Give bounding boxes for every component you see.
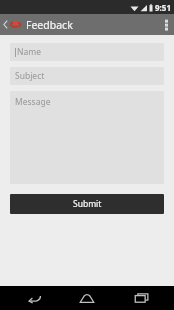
button[interactable]: Submit — [10, 194, 164, 214]
button[interactable]: Message — [10, 91, 164, 184]
staticText: Message — [15, 96, 51, 108]
button[interactable]: Subject — [10, 67, 164, 85]
staticText: 9:51 — [155, 2, 171, 13]
staticText: Feedback — [26, 18, 73, 32]
button[interactable]: Home — [67, 286, 107, 310]
button[interactable]: Back — [14, 286, 54, 310]
button[interactable]: Recent apps — [121, 286, 161, 310]
staticText: Subject — [15, 70, 45, 82]
button[interactable]: Navigate up — [0, 14, 23, 35]
staticText: Name — [17, 46, 41, 58]
button[interactable]: Name — [10, 43, 164, 61]
staticText: Submit — [73, 198, 102, 210]
button[interactable]: More options — [158, 14, 174, 35]
